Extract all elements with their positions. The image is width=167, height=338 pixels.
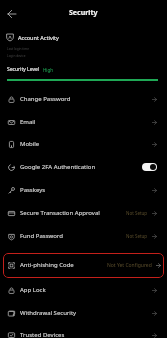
staticText: Anti-phishing Code bbox=[20, 261, 74, 269]
staticText: Not Yet Configured bbox=[107, 262, 152, 269]
staticText: Last login time bbox=[7, 47, 30, 51]
button[interactable]: Email bbox=[0, 112, 167, 132]
staticText: Change Password bbox=[20, 95, 71, 103]
staticText: Security bbox=[69, 8, 98, 18]
staticText: Login device bbox=[7, 54, 26, 58]
button[interactable]: Trusted Devices bbox=[0, 325, 167, 338]
button[interactable]: Anti-phishing Code bbox=[0, 255, 167, 275]
staticText: Not Setup bbox=[126, 233, 148, 239]
staticText: Mobile bbox=[20, 140, 40, 148]
button[interactable]: Mobile bbox=[0, 134, 167, 154]
staticText: Trusted Devices bbox=[20, 331, 65, 338]
staticText: Not Setup bbox=[126, 210, 148, 216]
staticText: High bbox=[43, 67, 54, 73]
button[interactable]: Secure Transaction Approval bbox=[0, 203, 167, 223]
staticText: Withdrawal Security bbox=[20, 309, 77, 317]
staticText: Google 2FA Authentication bbox=[20, 163, 96, 171]
staticText: Account Activity bbox=[18, 34, 59, 41]
staticText: Secure Transaction Approval bbox=[20, 209, 100, 217]
button[interactable]: Change Password bbox=[0, 89, 167, 109]
button[interactable]: Google 2FA Authentication bbox=[0, 157, 167, 177]
button[interactable]: Fund Password bbox=[0, 226, 167, 246]
button[interactable]: App Lock bbox=[0, 280, 167, 300]
staticText: Fund Password bbox=[20, 232, 63, 240]
staticText: Passkeys bbox=[20, 186, 46, 194]
button[interactable]: Withdrawal Security bbox=[0, 303, 167, 323]
staticText: Security Level bbox=[7, 66, 40, 73]
button[interactable]: Back bbox=[4, 6, 20, 22]
staticText: Email bbox=[20, 118, 36, 126]
button[interactable]: Passkeys bbox=[0, 180, 167, 200]
staticText: App Lock bbox=[20, 286, 46, 294]
